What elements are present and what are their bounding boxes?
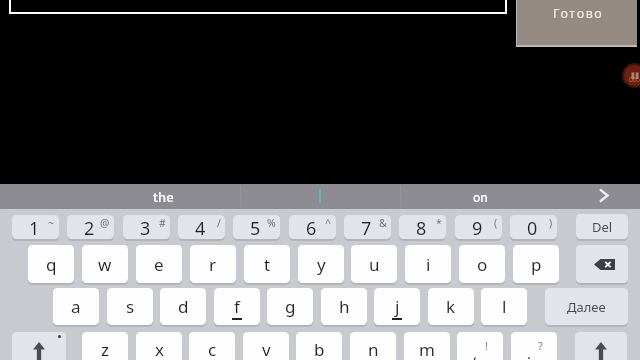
button[interactable]: 5 — [233, 215, 280, 239]
staticText: # — [159, 216, 166, 230]
button[interactable]: 3 — [123, 215, 170, 239]
button[interactable]: More suggestions — [578, 184, 630, 209]
staticText: k — [446, 295, 456, 318]
staticText: the — [153, 188, 174, 206]
staticText: % — [267, 216, 276, 230]
button[interactable]: q — [28, 245, 74, 283]
button[interactable]: d — [160, 288, 206, 325]
button[interactable]: k — [428, 288, 474, 325]
button[interactable]: h — [321, 288, 367, 325]
button[interactable]: Backspace — [576, 245, 628, 283]
staticText: Далее — [567, 298, 606, 316]
staticText: Del — [592, 218, 613, 236]
button[interactable]: 4 — [178, 215, 225, 239]
staticText: ) — [549, 216, 553, 230]
staticText: 2 — [84, 216, 95, 239]
button[interactable]: a — [53, 288, 99, 325]
staticText: o — [477, 253, 488, 276]
button[interactable]: x — [136, 332, 182, 360]
button[interactable]: Del — [576, 214, 628, 239]
button[interactable]: Готово — [516, 0, 637, 47]
staticText: c — [208, 338, 217, 360]
staticText: 5 — [250, 216, 261, 239]
staticText: s — [126, 295, 135, 318]
button[interactable]: v — [243, 332, 289, 360]
staticText: f — [234, 295, 240, 318]
staticText: on — [473, 189, 488, 205]
button[interactable]: 8 — [399, 215, 446, 239]
staticText: p — [531, 253, 542, 276]
staticText: h — [339, 295, 350, 318]
staticText: i — [426, 253, 431, 276]
staticText: 1 — [29, 216, 40, 239]
button[interactable]: on — [400, 184, 560, 209]
staticText: g — [285, 295, 296, 318]
button[interactable]: Shift — [12, 332, 66, 360]
staticText: 7 — [361, 216, 372, 239]
button[interactable]: 2 — [67, 215, 114, 239]
button[interactable]: 6 — [289, 215, 336, 239]
button[interactable]: 7 — [344, 215, 391, 239]
staticText: / — [217, 216, 221, 230]
button[interactable]: o — [459, 245, 505, 283]
staticText: 06:44 — [629, 75, 640, 85]
button[interactable]: n — [350, 332, 396, 360]
button[interactable]: w — [82, 245, 128, 283]
staticText: . — [527, 343, 532, 360]
button[interactable]: s — [107, 288, 153, 325]
staticText: w — [98, 253, 112, 276]
button[interactable]: Shift — [575, 332, 627, 360]
button[interactable]: 1 — [12, 215, 59, 239]
button[interactable]: y — [298, 245, 344, 283]
button[interactable]: m — [404, 332, 450, 360]
staticText: ? — [538, 338, 543, 353]
button[interactable]: f — [214, 288, 260, 325]
staticText: b — [314, 338, 325, 360]
staticText: 6 — [306, 216, 317, 239]
button[interactable]: . — [511, 332, 557, 360]
button[interactable]: the — [83, 184, 243, 209]
staticText: & — [379, 216, 387, 230]
staticText: y — [317, 253, 326, 276]
staticText: a — [71, 295, 81, 318]
staticText: 4 — [195, 216, 206, 239]
staticText: t — [264, 253, 271, 276]
button[interactable]: t — [244, 245, 290, 283]
staticText: q — [46, 253, 57, 276]
staticText: z — [101, 338, 109, 360]
staticText: 0 — [527, 216, 538, 239]
staticText: x — [155, 338, 164, 360]
button[interactable]: r — [190, 245, 236, 283]
button[interactable]: j — [374, 288, 420, 325]
staticText: 8 — [416, 216, 427, 239]
staticText: u — [369, 253, 380, 276]
button[interactable]: Далее — [545, 288, 628, 325]
button[interactable]: 0 — [510, 215, 557, 239]
button[interactable]: p — [513, 245, 559, 283]
staticText: ~ — [48, 216, 55, 230]
button[interactable]: 9 — [455, 215, 502, 239]
staticText: r — [209, 253, 217, 276]
staticText: 3 — [140, 216, 151, 239]
button[interactable]: g — [267, 288, 313, 325]
button[interactable]: c — [189, 332, 235, 360]
staticText: n — [368, 338, 379, 360]
staticText: @ — [100, 216, 110, 230]
staticText: l — [502, 295, 507, 318]
staticText: d — [178, 295, 189, 318]
staticText: ( — [494, 216, 498, 230]
staticText: Готово — [553, 5, 604, 22]
button[interactable]: u — [351, 245, 397, 283]
button[interactable]: i — [405, 245, 451, 283]
staticText: ^ — [325, 216, 332, 230]
staticText: v — [262, 338, 271, 360]
staticText: ! — [485, 338, 488, 353]
button[interactable]: l — [481, 288, 527, 325]
staticText: m — [419, 338, 435, 360]
button[interactable]: z — [82, 332, 128, 360]
staticText: j — [395, 295, 400, 318]
button[interactable]: b — [296, 332, 342, 360]
button[interactable]: , — [457, 332, 503, 360]
staticText: , — [473, 343, 478, 360]
button[interactable]: e — [136, 245, 182, 283]
